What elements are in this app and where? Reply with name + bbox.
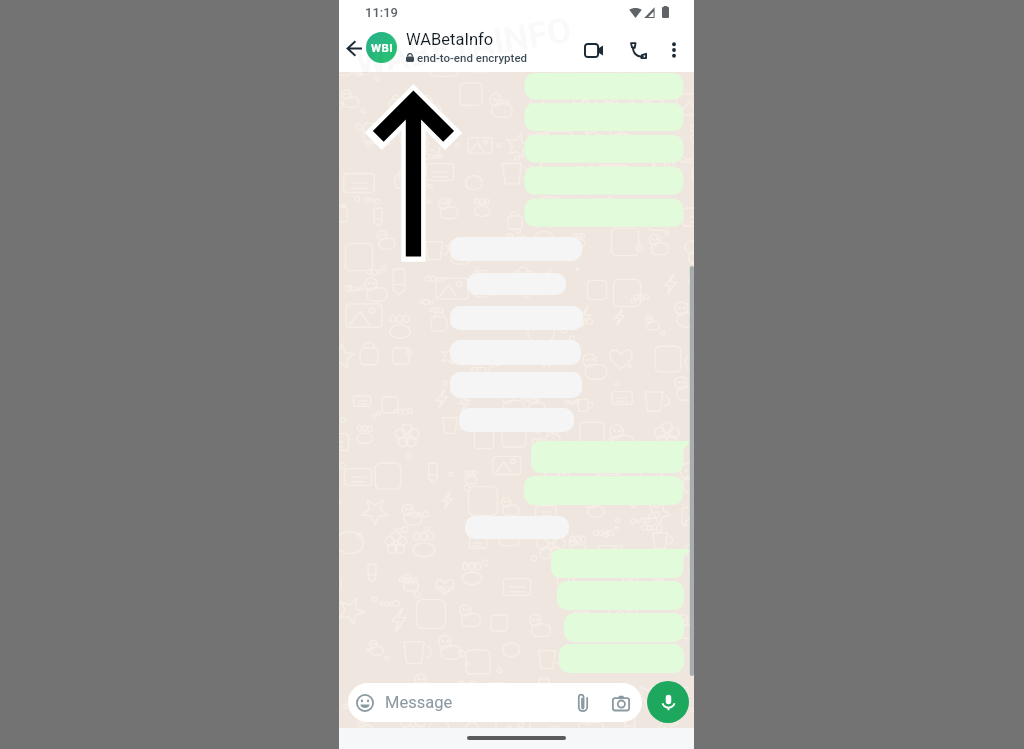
button[interactable]: More options	[660, 36, 688, 64]
button[interactable]: Attach	[572, 692, 594, 714]
staticText: Message	[385, 693, 453, 712]
button[interactable]: Video call	[579, 36, 607, 64]
staticText: 11:19	[365, 5, 399, 20]
button[interactable]: Contact avatar	[366, 32, 397, 63]
staticText: WABetaInfo	[406, 30, 494, 49]
staticText: WABETAINFO	[353, 10, 575, 84]
button[interactable]: Voice message	[647, 681, 689, 723]
button[interactable]: Emoji	[348, 683, 642, 722]
button[interactable]: Back	[342, 36, 366, 60]
button[interactable]: Camera	[610, 692, 632, 714]
staticText: WBI	[371, 41, 393, 54]
button[interactable]: Voice call	[624, 36, 652, 64]
staticText: end-to-end encrypted	[417, 51, 528, 64]
button[interactable]: WABetaInfo	[406, 30, 579, 62]
button[interactable]: Emoji	[354, 692, 376, 714]
